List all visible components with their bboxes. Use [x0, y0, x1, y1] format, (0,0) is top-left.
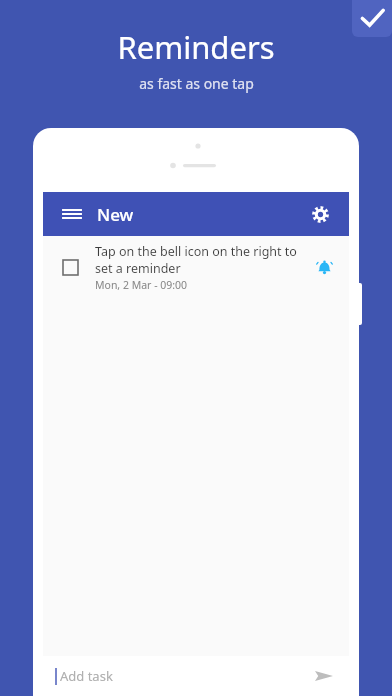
staticText: New — [97, 203, 134, 226]
button[interactable]: Menu — [55, 197, 89, 231]
button[interactable]: Settings — [303, 197, 337, 231]
staticText: Add task — [60, 667, 113, 685]
button[interactable]: Mark complete — [43, 236, 349, 298]
staticText: as fast as one tap — [139, 74, 254, 93]
button[interactable]: Set reminder — [309, 252, 339, 282]
staticText: Reminders — [117, 26, 275, 68]
button[interactable]: Mark complete — [57, 254, 83, 280]
button[interactable]: Send — [311, 663, 337, 689]
staticText: Mon, 2 Mar - 09:00 — [95, 278, 188, 292]
button[interactable]: Done — [352, 0, 392, 37]
staticText: Tap on the bell icon on the right to set… — [95, 243, 297, 276]
button[interactable]: Add task — [43, 656, 349, 696]
